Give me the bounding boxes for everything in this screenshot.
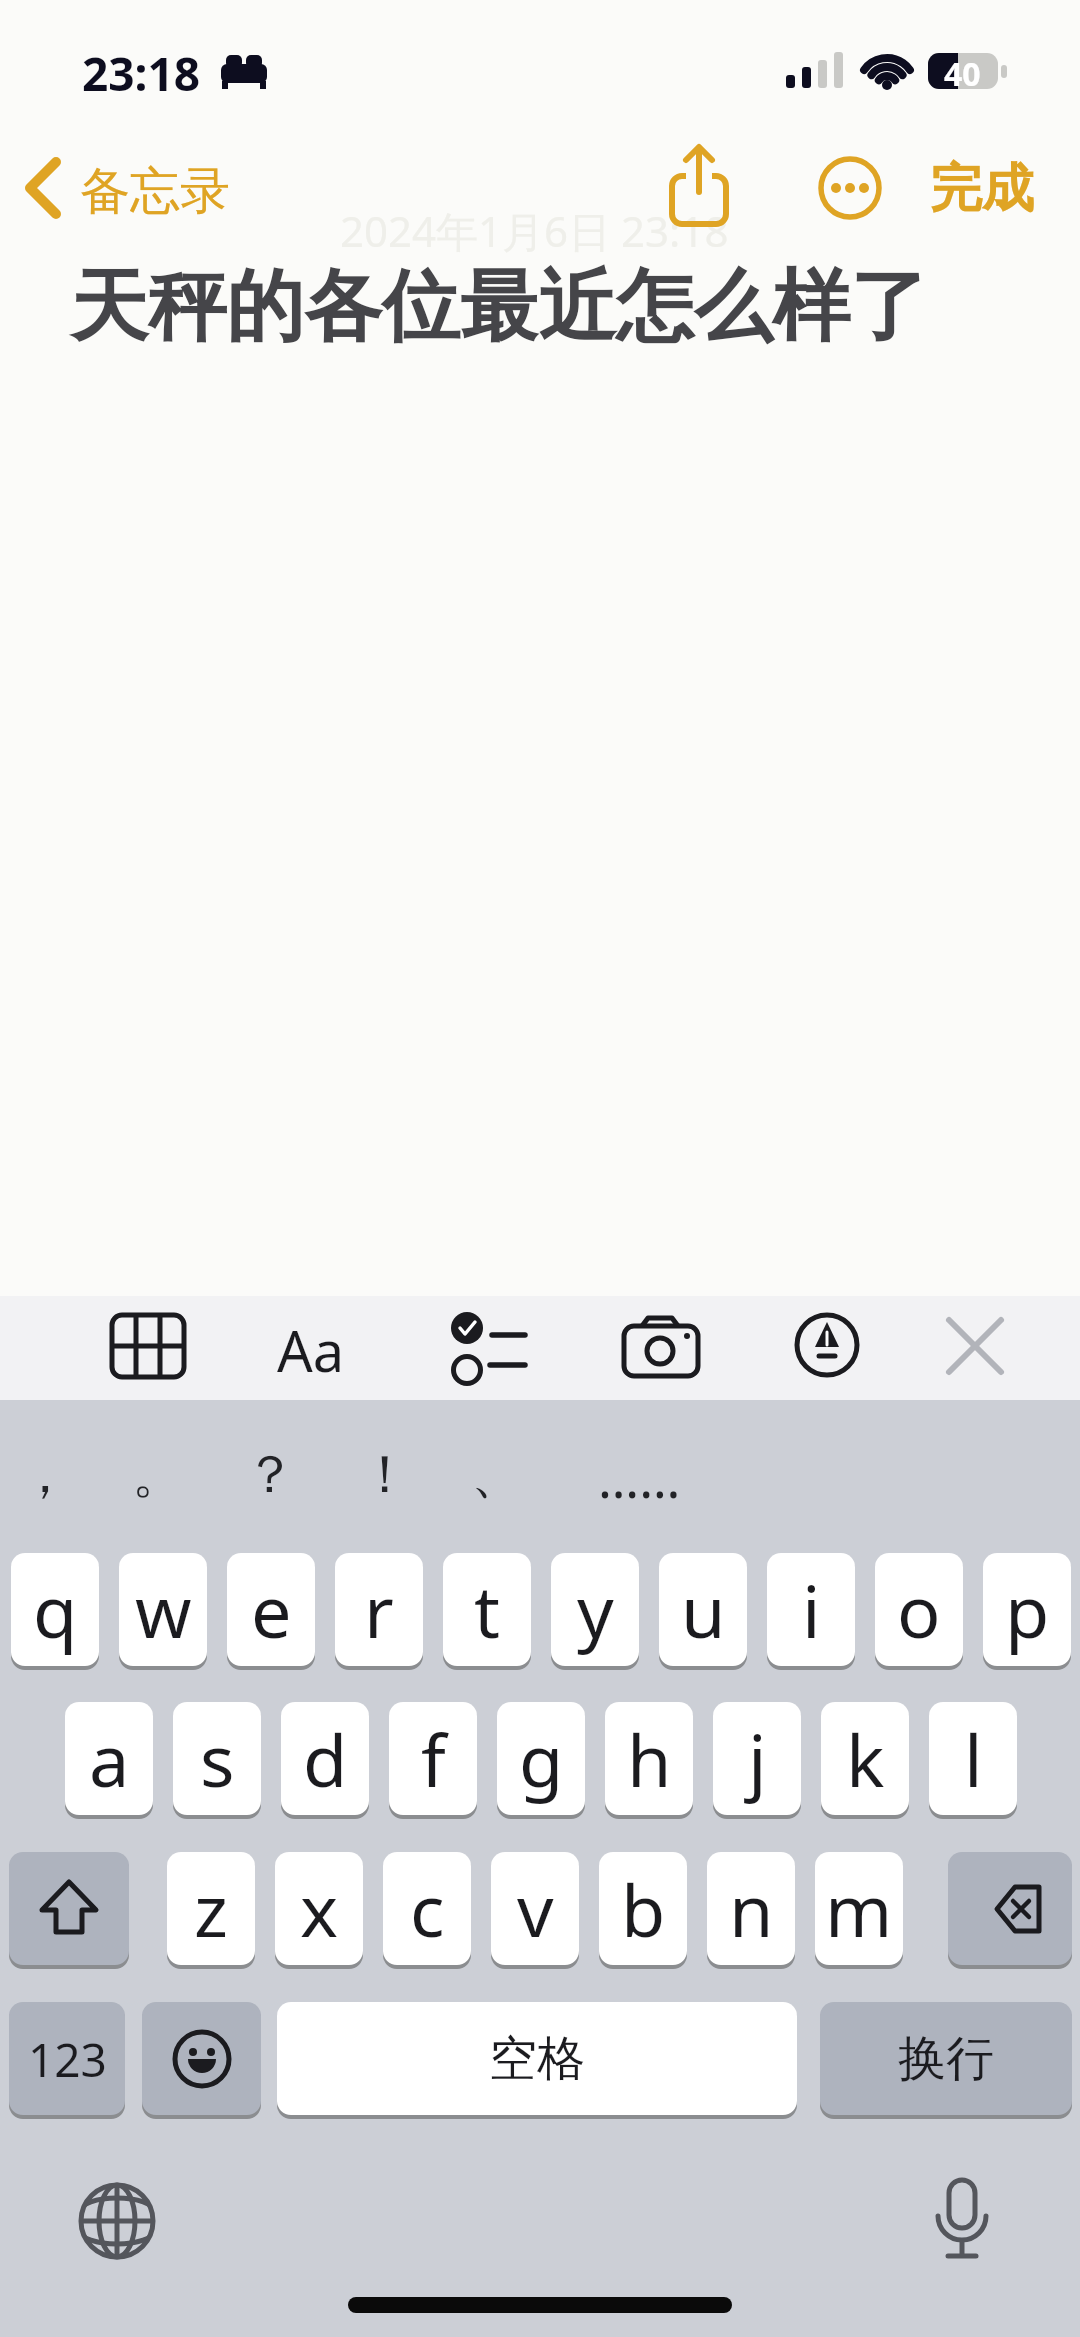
button[interactable]: z [167,1852,255,1966]
button[interactable] [946,1317,1004,1375]
staticText: 、 [471,1442,523,1508]
staticText: Aa [277,1312,345,1388]
staticText: b [621,1860,666,1958]
staticText: ！ [359,1442,411,1508]
staticText: x [300,1860,339,1958]
staticText: g [519,1710,564,1808]
button[interactable]: d [281,1702,369,1816]
button[interactable] [818,156,882,220]
button[interactable] [668,144,732,226]
staticText: 123 [28,2028,107,2091]
staticText: 40 [944,52,981,96]
staticText: i [802,1561,821,1659]
staticText: j [748,1710,767,1808]
staticText: o [897,1561,941,1659]
staticText: l [964,1710,983,1808]
button[interactable]: a [65,1702,153,1816]
staticText: s [200,1710,235,1808]
staticText: q [33,1561,78,1659]
staticText: e [251,1561,292,1659]
button[interactable] [794,1312,860,1378]
staticText: w [135,1561,192,1659]
button[interactable]: g [497,1702,585,1816]
staticText: a [89,1710,130,1808]
button[interactable]: 完成 [930,156,1034,222]
button[interactable]: j [713,1702,801,1816]
staticText: n [729,1860,774,1958]
button[interactable]: t [443,1553,531,1667]
staticText: 换行 [898,2029,994,2089]
staticText: h [627,1710,672,1808]
button[interactable]: 123 [9,2002,125,2116]
button[interactable] [9,1852,129,1966]
staticText: v [517,1860,554,1958]
button[interactable]: p [983,1553,1071,1667]
button[interactable]: f [389,1702,477,1816]
button[interactable] [930,2178,994,2266]
button[interactable]: e [227,1553,315,1667]
button[interactable] [110,1313,186,1379]
button[interactable]: 换行 [820,2002,1072,2116]
staticText: z [194,1860,228,1958]
button[interactable]: u [659,1553,747,1667]
button[interactable] [948,1852,1072,1966]
button[interactable]: m [815,1852,903,1966]
staticText: u [681,1561,726,1659]
button[interactable]: l [929,1702,1017,1816]
button[interactable] [622,1316,700,1378]
staticText: y [577,1561,614,1659]
button[interactable]: n [707,1852,795,1966]
staticText: r [364,1561,394,1659]
staticText: c [410,1860,445,1958]
button[interactable] [142,2002,261,2116]
button[interactable]: c [383,1852,471,1966]
staticText: 空格 [489,2029,585,2089]
staticText: ？ [244,1442,296,1508]
button[interactable]: b [599,1852,687,1966]
button[interactable]: w [119,1553,207,1667]
staticText: …… [598,1442,681,1513]
button[interactable]: r [335,1553,423,1667]
button[interactable]: v [491,1852,579,1966]
staticText: 完成 [930,156,1034,222]
button[interactable]: q [11,1553,99,1667]
staticText: 23:18 [82,42,201,105]
button[interactable] [78,2182,156,2260]
button[interactable]: o [875,1553,963,1667]
button[interactable]: s [173,1702,261,1816]
staticText: p [1005,1561,1050,1659]
staticText: 。 [132,1442,184,1508]
staticText: f [421,1710,446,1808]
button[interactable]: i [767,1553,855,1667]
button[interactable]: 空格 [277,2002,797,2116]
staticText: 2024年1月6日 23:18 [340,202,729,259]
button[interactable]: x [275,1852,363,1966]
staticText: d [303,1710,348,1808]
button[interactable]: k [821,1702,909,1816]
staticText: k [846,1710,885,1808]
staticText: ， [19,1442,71,1508]
staticText: 备忘录 [80,160,230,223]
staticText: t [474,1561,500,1659]
staticText: 天秤的各位最近怎么样了 [70,258,928,356]
staticText: m [825,1860,893,1958]
button[interactable]: y [551,1553,639,1667]
button[interactable] [450,1308,528,1386]
button[interactable]: h [605,1702,693,1816]
